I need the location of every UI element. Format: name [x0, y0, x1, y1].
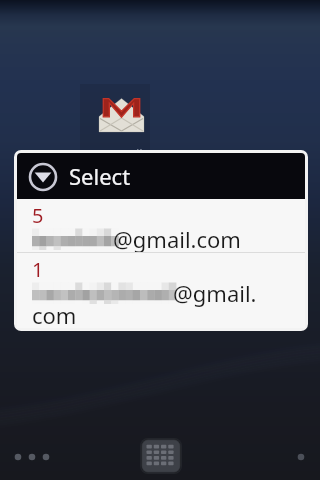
button[interactable]: 5	[17, 199, 305, 252]
staticText: com	[32, 300, 77, 330]
button[interactable]: 1	[17, 253, 305, 328]
staticText: Select	[69, 161, 131, 191]
other: Select account	[27, 161, 59, 193]
button[interactable]: Gmail	[80, 84, 150, 150]
button[interactable]: Apps	[140, 438, 182, 474]
staticText: @gmail.	[173, 278, 257, 308]
button[interactable]: Select account	[17, 153, 305, 199]
button[interactable]: Previous home screens	[8, 446, 54, 468]
button[interactable]: Next home screen	[290, 446, 312, 468]
staticText: Gmail	[107, 145, 143, 163]
staticText: 5	[32, 202, 44, 229]
staticText: 1	[32, 256, 44, 283]
staticText: @gmail.com	[113, 224, 241, 254]
